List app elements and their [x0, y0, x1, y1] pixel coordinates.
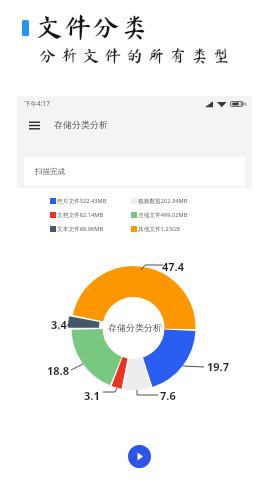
staticText: 文本文件88.96MB	[57, 225, 104, 233]
staticText: 分析文件的所有类型	[39, 47, 235, 64]
staticText: 47.4	[162, 259, 184, 274]
button[interactable]: Start scan	[128, 445, 151, 468]
staticText: 74%	[236, 100, 247, 107]
staticText: 18.8	[47, 363, 69, 378]
staticText: 下午4:17	[24, 99, 50, 108]
staticText: 存储分类分析	[108, 322, 162, 333]
staticText: 7.6	[160, 388, 176, 403]
staticText: 视频数据202.34MB	[138, 197, 188, 205]
staticText: 3.4	[51, 317, 67, 332]
staticText: 压缩文件499.02MB	[138, 211, 188, 219]
staticText: 扫描完成	[35, 167, 65, 176]
staticText: 文档文件82.14MB	[57, 211, 104, 219]
staticText: 19.7	[207, 359, 229, 374]
button[interactable]: Menu	[26, 117, 42, 133]
button[interactable]: 扫描完成	[24, 157, 245, 186]
staticText: 照片文件522.43MB	[57, 197, 107, 205]
staticText: 3.1	[84, 388, 100, 403]
staticText: 其他文件1.23GB	[138, 225, 180, 233]
staticText: 文件分类	[36, 13, 150, 40]
staticText: 存储分类分析	[54, 119, 108, 130]
